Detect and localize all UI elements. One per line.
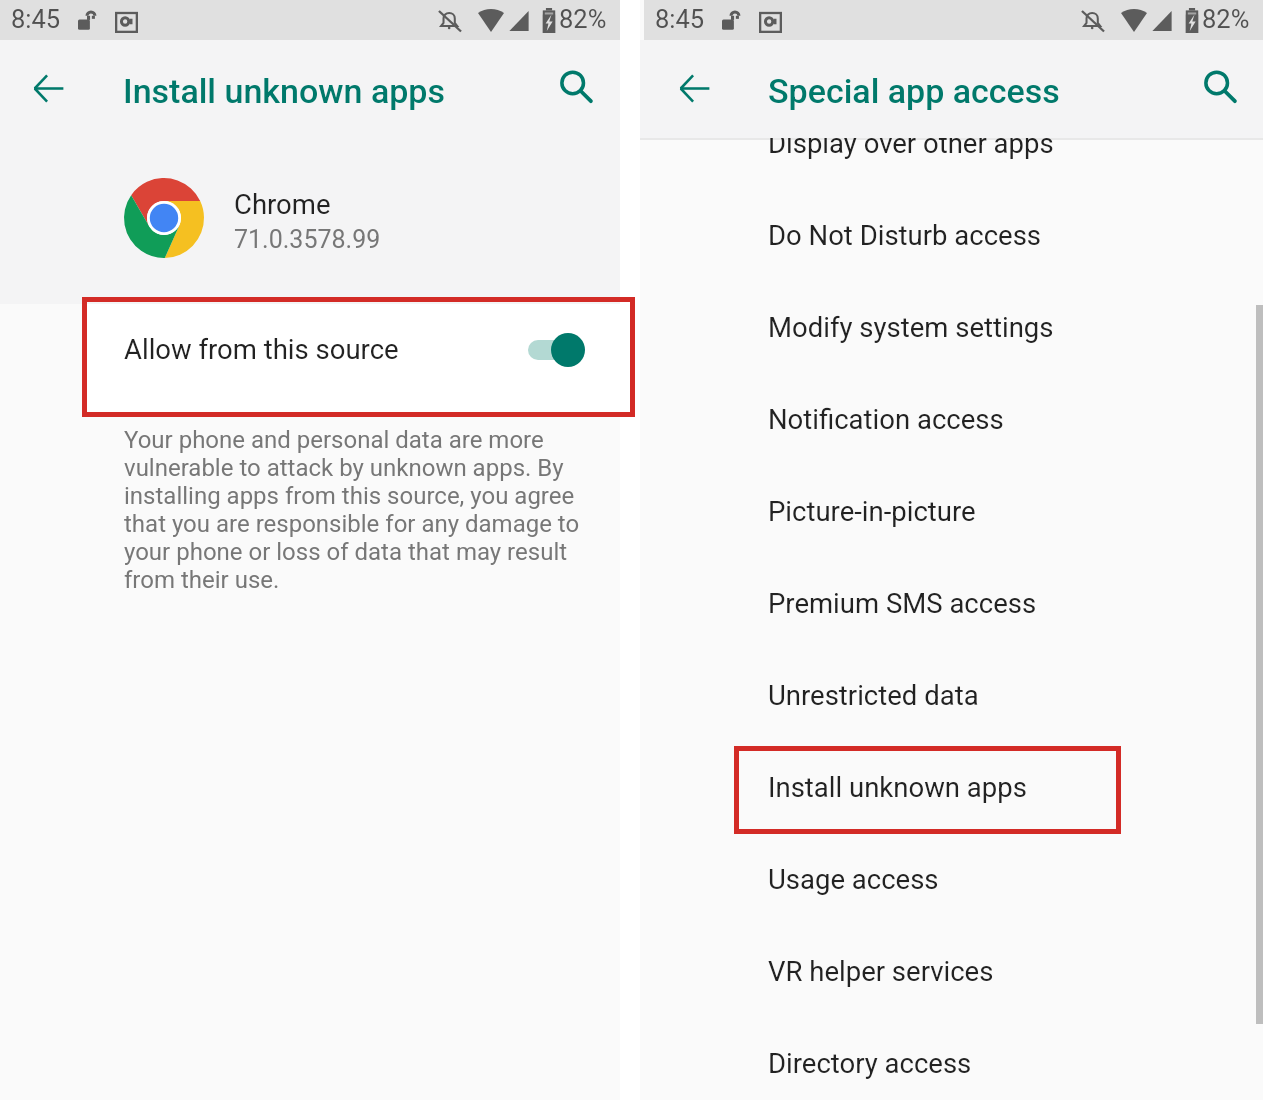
staticText: Your phone and personal data are more vu… [124,426,584,594]
staticText: 82% [1202,4,1250,34]
staticText: Do Not Disturb access [768,219,1042,251]
button[interactable]: Search [1193,60,1249,116]
staticText: Picture-in-picture [768,495,976,527]
staticText: Modify system settings [768,311,1054,343]
button[interactable]: Install unknown apps [640,741,1263,833]
button[interactable]: Unrestricted data [640,649,1263,741]
staticText: Directory access [768,1047,972,1079]
staticText: Special app access [768,71,1060,111]
button[interactable]: Search [549,60,605,116]
staticText: 8:45 [655,4,705,34]
button[interactable]: Do Not Disturb access [640,189,1263,281]
staticText: Install unknown apps [768,771,1027,803]
staticText: Premium SMS access [768,587,1037,619]
button[interactable]: Modify system settings [640,281,1263,373]
staticText: Allow from this source [124,333,399,365]
button[interactable]: Usage access [640,833,1263,925]
staticText: Unrestricted data [768,679,979,711]
button[interactable]: Allow from this source [0,304,620,417]
staticText: Display over other apps [768,127,1054,159]
button[interactable]: Premium SMS access [640,557,1263,649]
button[interactable]: Notification access [640,373,1263,465]
button[interactable]: Back [664,58,724,118]
button[interactable]: Picture-in-picture [640,465,1263,557]
staticText: Usage access [768,863,939,895]
staticText: 8:45 [11,4,61,34]
button[interactable]: VR helper services [640,925,1263,1017]
staticText: Chrome [234,188,331,220]
staticText: 82% [559,4,607,34]
staticText: VR helper services [768,955,994,987]
button[interactable]: Display over other apps [640,97,1263,189]
staticText: 71.0.3578.99 [234,225,381,254]
button[interactable]: Back [18,58,78,118]
staticText: Notification access [768,403,1004,435]
button[interactable]: Directory access [640,1017,1263,1100]
button[interactable]: Chrome [0,138,620,304]
staticText: Install unknown apps [123,71,445,111]
